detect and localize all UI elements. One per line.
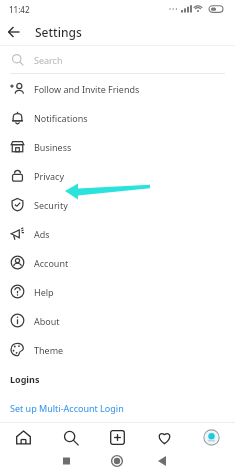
staticText: Search <box>34 54 63 66</box>
staticText: Notifications <box>34 112 88 124</box>
button[interactable]: Notifications <box>0 103 235 132</box>
staticText: Business <box>34 141 72 153</box>
button[interactable]: Privacy <box>0 161 235 190</box>
button[interactable]: Account <box>0 248 235 277</box>
button[interactable]: Add post <box>94 423 141 451</box>
button[interactable]: Home <box>0 423 47 451</box>
button[interactable]: Help <box>0 277 235 306</box>
button[interactable]: Set up Multi-Account Login <box>10 393 235 422</box>
button[interactable]: Ads <box>0 219 235 248</box>
button[interactable]: About <box>0 306 235 335</box>
button[interactable]: Security <box>0 190 235 219</box>
staticText: Logins <box>10 373 40 385</box>
button[interactable]: Activity <box>141 423 188 451</box>
button[interactable]: Search <box>47 423 94 451</box>
staticText: Privacy <box>34 170 65 182</box>
button[interactable]: Theme <box>0 335 235 364</box>
button[interactable]: Follow and Invite Friends <box>0 74 235 103</box>
staticText: 11:42 <box>9 4 30 15</box>
staticText: Help <box>34 286 54 298</box>
button[interactable]: Business <box>0 132 235 161</box>
staticText: Ads <box>34 228 50 240</box>
staticText: Account <box>34 257 69 269</box>
button[interactable]: Profile <box>188 423 235 451</box>
staticText: Settings <box>35 24 82 40</box>
staticText: Security <box>34 199 68 211</box>
staticText: Theme <box>34 344 64 356</box>
staticText: Set up Multi-Account Login <box>10 402 124 414</box>
staticText: About <box>34 315 60 327</box>
staticText: Follow and Invite Friends <box>34 83 140 95</box>
button[interactable]: Search <box>0 46 235 73</box>
button[interactable]: Back <box>0 18 28 46</box>
